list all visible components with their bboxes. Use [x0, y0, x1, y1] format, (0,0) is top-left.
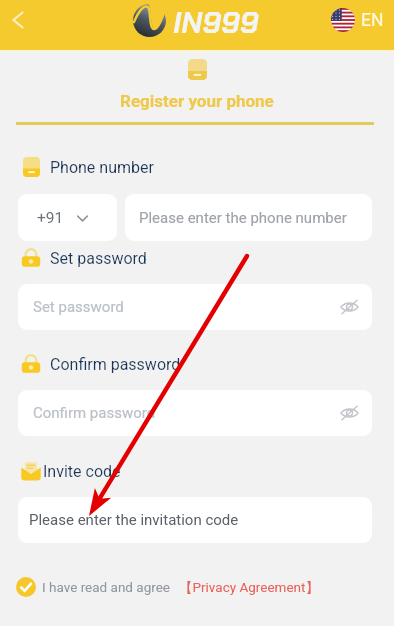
staticText: Confirm password	[33, 404, 156, 422]
staticText: Please enter the invitation code	[29, 511, 239, 529]
staticText: EN	[361, 10, 384, 31]
staticText: Set password	[50, 249, 147, 268]
staticText: Phone number	[50, 158, 154, 177]
staticText: Confirm password	[50, 355, 181, 374]
button[interactable]: I have read and agree	[16, 577, 319, 597]
button[interactable]: EN	[331, 8, 384, 32]
button[interactable]: Confirm password	[18, 390, 372, 436]
staticText: IN999	[173, 3, 259, 42]
staticText: Please enter the phone number	[139, 209, 347, 227]
staticText: Invite code	[43, 462, 121, 481]
staticText: I have read and agree	[42, 579, 171, 595]
button[interactable]: Please enter the invitation code	[18, 497, 372, 543]
staticText: Register your phone	[120, 91, 274, 111]
button[interactable]: Set password	[18, 284, 372, 330]
staticText: Set password	[33, 298, 124, 316]
staticText: +91	[37, 209, 64, 227]
button[interactable]: Please enter the phone number	[125, 194, 372, 241]
button[interactable]: +91	[18, 194, 117, 241]
button[interactable]: Show password	[339, 404, 359, 422]
button[interactable]: Show password	[339, 298, 359, 316]
staticText: 【Privacy Agreement】	[179, 579, 319, 596]
button[interactable]: Back	[2, 4, 34, 36]
